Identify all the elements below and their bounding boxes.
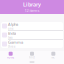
staticText: one bbox=[8, 27, 14, 30]
button[interactable]: Beta bbox=[1, 31, 63, 39]
staticText: Home bbox=[7, 56, 15, 59]
button[interactable]: Find bbox=[21, 51, 43, 60]
staticText: Alpha bbox=[8, 22, 18, 27]
button[interactable]: Home bbox=[0, 51, 21, 60]
staticText: Library bbox=[23, 1, 41, 8]
staticText: three bbox=[8, 45, 16, 48]
staticText: Find bbox=[29, 56, 35, 59]
button[interactable]: Alpha bbox=[1, 22, 63, 30]
staticText: 12 items bbox=[24, 8, 39, 13]
staticText: Gamma bbox=[8, 40, 23, 45]
button[interactable]: Gamma bbox=[1, 40, 63, 48]
staticText: Beta bbox=[8, 31, 16, 36]
staticText: two bbox=[8, 36, 13, 39]
button[interactable]: Me bbox=[43, 51, 64, 60]
staticText: Me bbox=[51, 56, 55, 59]
